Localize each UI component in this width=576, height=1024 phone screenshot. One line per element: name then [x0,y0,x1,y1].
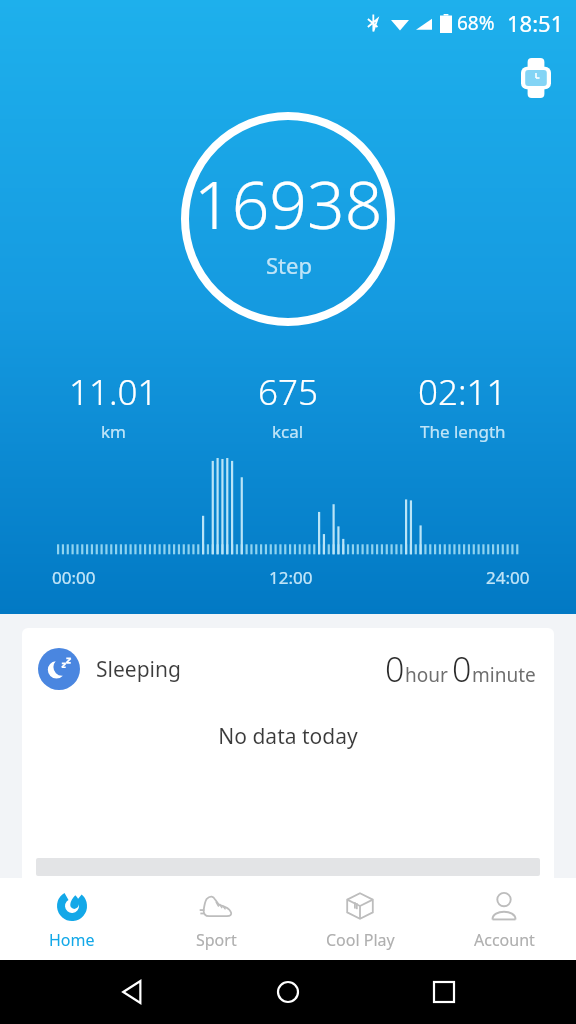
staticText: 68% [457,10,495,36]
staticText: 12:00 [269,566,313,589]
staticText: 00:00 [52,566,96,589]
staticText: 0 [385,646,405,692]
staticText: Cool Play [326,929,395,951]
button[interactable]: 02:11 [375,368,550,443]
button[interactable]: Sleeping [22,628,554,878]
staticText: Sleeping [96,655,181,684]
button[interactable]: Home [0,878,144,960]
button[interactable]: Sport [144,878,288,960]
staticText: 16938 [194,158,383,248]
staticText: 675 [258,368,318,416]
staticText: kcal [272,420,304,443]
staticText: hour [405,662,448,688]
button[interactable]: Cool Play [288,878,432,960]
staticText: Step [266,250,312,280]
staticText: Account [474,929,535,951]
staticText: Sport [196,929,237,951]
button[interactable]: 16938 [181,112,395,326]
button[interactable]: Home [264,968,312,1016]
staticText: minute [472,662,536,688]
staticText: 24:00 [486,566,530,589]
staticText: 0 [452,646,472,692]
button[interactable]: Account [432,878,576,960]
staticText: Home [49,929,95,951]
staticText: The length [420,420,506,443]
button[interactable]: 11.01 [26,368,200,443]
button[interactable]: Recent apps [420,968,468,1016]
button[interactable]: My watch device [514,56,558,100]
staticText: No data today [22,722,554,751]
staticText: 11.01 [69,368,158,416]
staticText: km [101,420,126,443]
button[interactable]: Back [108,968,156,1016]
staticText: 02:11 [418,368,507,416]
button[interactable]: 675 [200,368,375,443]
staticText: 18:51 [507,8,564,38]
